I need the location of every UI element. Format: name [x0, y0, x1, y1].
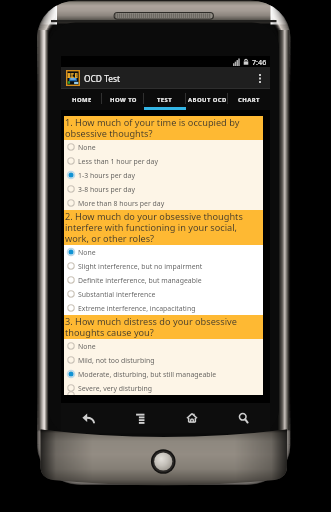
button[interactable]: More options: [253, 67, 267, 89]
staticText: Substantial interference: [78, 290, 156, 299]
staticText: TEST: [157, 96, 173, 104]
button[interactable]: Search: [218, 403, 270, 433]
button[interactable]: HOW TO: [102, 89, 144, 110]
button[interactable]: None: [64, 140, 263, 154]
staticText: None: [78, 342, 96, 351]
staticText: 1. How much of your time is occupied by …: [65, 116, 263, 139]
staticText: Slight interference, but no impairment: [78, 262, 203, 271]
staticText: Moderate, disturbing, but still manageab…: [78, 370, 217, 379]
staticText: 1-3 hours per day: [78, 171, 135, 180]
staticText: Severe, very disturbing: [78, 384, 153, 393]
staticText: Extreme interference, incapacitating: [78, 304, 196, 313]
staticText: 3-8 hours per day: [78, 185, 135, 194]
button[interactable]: 3-8 hours per day: [64, 182, 263, 196]
staticText: None: [78, 143, 96, 152]
staticText: ABOUT OCD: [188, 96, 227, 104]
button[interactable]: None: [64, 245, 263, 259]
staticText: 2. How much do your obsessive thoughts i…: [65, 210, 263, 244]
button[interactable]: Definite interference, but manageable: [64, 273, 263, 287]
button[interactable]: Moderate, disturbing, but still manageab…: [64, 367, 263, 381]
button[interactable]: More than 8 hours per day: [64, 196, 263, 210]
button[interactable]: ABOUT OCD: [186, 89, 228, 110]
staticText: CHART: [238, 96, 260, 104]
button[interactable]: Back: [61, 403, 114, 433]
button[interactable]: HOME: [61, 89, 102, 110]
button[interactable]: Home: [166, 403, 218, 433]
button[interactable]: 1-3 hours per day: [64, 168, 263, 182]
button[interactable]: None: [64, 339, 263, 353]
button[interactable]: Substantial interference: [64, 287, 263, 301]
staticText: None: [78, 248, 96, 257]
staticText: 3. How much distress do your obsessive t…: [65, 315, 263, 338]
staticText: Mild, not too disturbing: [78, 356, 155, 365]
staticText: Definite interference, but manageable: [78, 276, 202, 285]
staticText: Less than 1 hour per day: [78, 157, 158, 166]
button[interactable]: TEST: [144, 89, 186, 110]
button[interactable]: Slight interference, but no impairment: [64, 259, 263, 273]
button[interactable]: Severe, very disturbing: [64, 381, 263, 395]
button[interactable]: Extreme interference, incapacitating: [64, 301, 263, 315]
staticText: OCD Test: [84, 73, 121, 84]
button[interactable]: Less than 1 hour per day: [64, 154, 263, 168]
staticText: HOW TO: [110, 96, 137, 104]
button[interactable]: Menu: [114, 403, 166, 433]
button[interactable]: CHART: [228, 89, 270, 110]
staticText: 7:46: [252, 57, 267, 67]
staticText: HOME: [72, 96, 92, 104]
button[interactable]: Mild, not too disturbing: [64, 353, 263, 367]
staticText: More than 8 hours per day: [78, 199, 165, 208]
